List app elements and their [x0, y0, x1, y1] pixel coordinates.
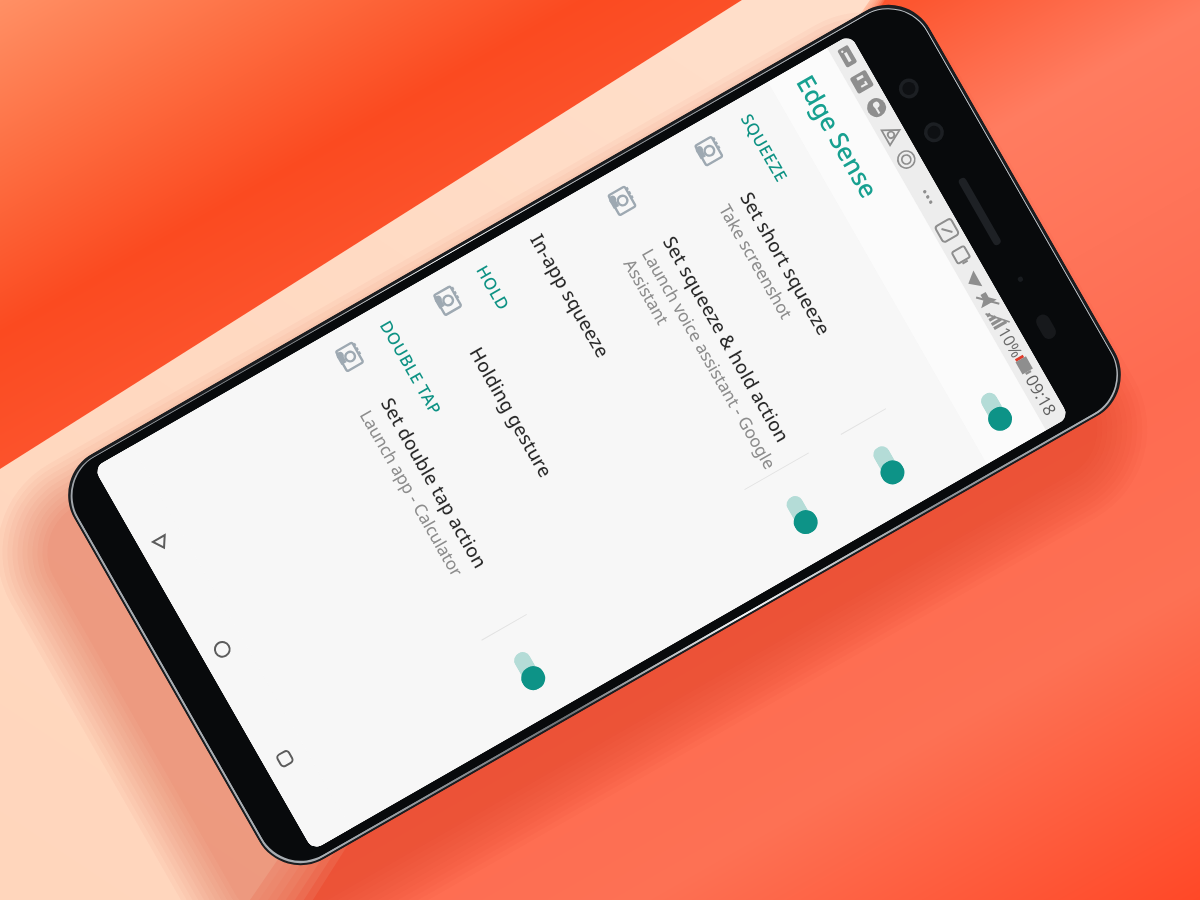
button[interactable]: In-app squeeze: [497, 203, 775, 619]
button[interactable]: Set short squeeze: [658, 104, 948, 527]
staticText: DOUBLE TAP: [376, 316, 448, 419]
button[interactable]: Home: [191, 616, 254, 681]
staticText: 10%: [993, 323, 1028, 362]
staticText: Set double tap action: [375, 393, 493, 573]
staticText: Holding gesture: [463, 342, 559, 483]
button[interactable]: Toggle Edge Sense: [973, 385, 1018, 437]
staticText: Launch voice assistant - Google Assistan…: [619, 244, 782, 484]
button[interactable]: Set squeeze & hold action switch: [732, 446, 871, 583]
staticText: Take screenshot: [714, 200, 798, 323]
button[interactable]: Holding gesture: [402, 257, 681, 674]
staticText: Launch app - Calculator: [355, 406, 469, 581]
staticText: 09:18: [1020, 370, 1062, 420]
button[interactable]: Set squeeze & hold action: [561, 148, 871, 583]
staticText: HOLD: [472, 261, 516, 314]
staticText: Edge Sense: [789, 68, 887, 204]
button[interactable]: Set double tap action: [298, 310, 589, 733]
button[interactable]: Set short squeeze switch: [828, 402, 948, 527]
staticText: Set short squeeze: [734, 187, 837, 341]
staticText: SQUEEZE: [737, 109, 794, 186]
staticText: Set squeeze & hold action: [657, 231, 796, 447]
button[interactable]: Recents: [254, 725, 317, 791]
button[interactable]: Set double tap action switch: [469, 607, 589, 733]
button[interactable]: Back: [129, 508, 192, 574]
staticText: In-app squeeze: [524, 229, 616, 362]
